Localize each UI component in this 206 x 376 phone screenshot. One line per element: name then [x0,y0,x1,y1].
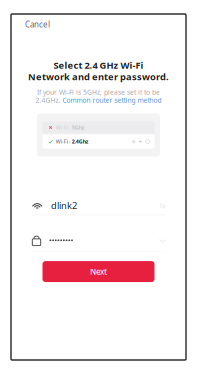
staticText: 5Ghz [72,124,85,131]
staticText: 2.4GHz. [35,96,62,104]
staticText: Wi-Fi - [56,124,72,131]
button[interactable]: Next [42,261,154,282]
staticText: Network and enter password. [28,70,169,83]
button[interactable]: Cancel [11,14,62,35]
staticText: If your Wi-Fi is 5GHz, please set it to … [37,88,160,97]
staticText: Next [90,266,107,277]
staticText: dlink2 [51,199,77,212]
staticText: Sp [159,202,165,209]
button[interactable]: Common router setting method [62,96,161,104]
staticText: Common router setting method [62,96,161,104]
staticText: Cancel [25,19,50,30]
staticText: 2.4Ghz [72,138,89,145]
staticText: Select 2.4 GHz Wi-Fi [53,59,143,71]
staticText: Wi-Fi - [56,138,72,145]
